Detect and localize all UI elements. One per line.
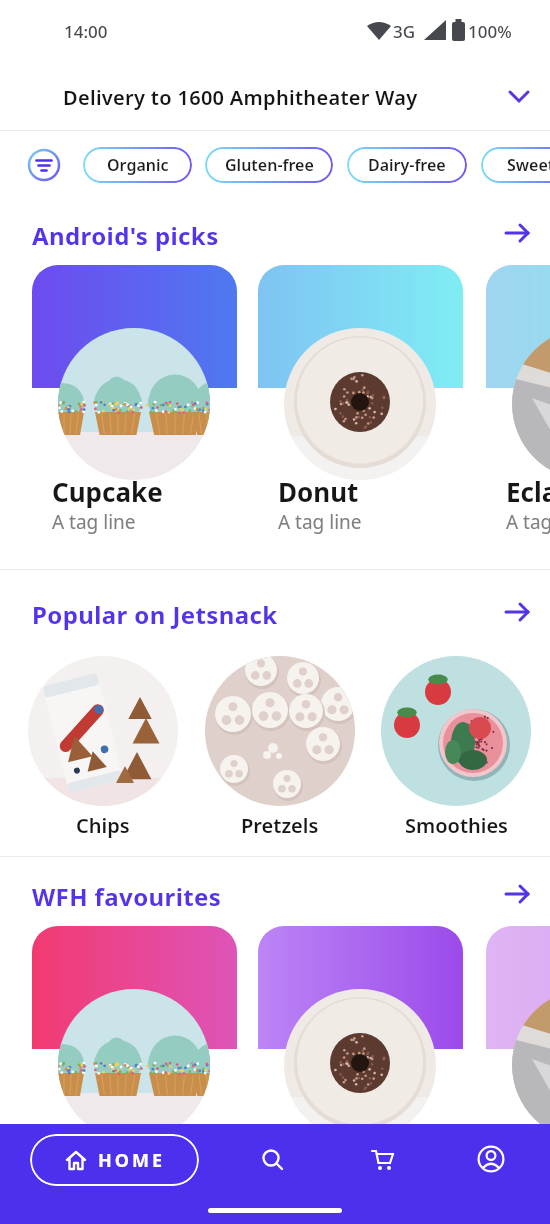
staticText: Dairy-free xyxy=(368,154,446,176)
staticText: Cupcake xyxy=(52,474,163,509)
button[interactable] xyxy=(500,597,538,629)
staticText: Pretzels xyxy=(241,812,319,838)
button[interactable] xyxy=(28,149,60,181)
staticText: Donut xyxy=(278,1135,359,1170)
staticText: Sweet xyxy=(507,154,550,176)
staticText: A tag line xyxy=(278,509,362,535)
staticText: 100% xyxy=(468,20,512,43)
staticText: 3G xyxy=(393,20,416,43)
button[interactable]: Dairy-free xyxy=(347,147,467,183)
staticText: Chips xyxy=(76,812,130,838)
staticText: WFH favourites xyxy=(32,880,222,913)
staticText: 14:00 xyxy=(64,20,108,43)
button[interactable]: Donut xyxy=(258,926,463,1213)
staticText: Organic xyxy=(107,154,169,176)
button[interactable]: Cupcake xyxy=(32,265,237,552)
button[interactable]: Chips xyxy=(28,656,178,826)
button[interactable] xyxy=(500,218,538,250)
button[interactable]: Pretzels xyxy=(205,656,355,826)
button[interactable]: Gluten-free xyxy=(205,147,333,183)
button[interactable]: Organic xyxy=(83,147,192,183)
staticText: Android's picks xyxy=(32,219,219,252)
staticText: Delivery to 1600 Amphitheater Way xyxy=(63,84,418,111)
button[interactable]: Eclair xyxy=(486,265,550,552)
staticText: Gluten-free xyxy=(225,154,314,176)
staticText: A tag line xyxy=(52,1170,136,1196)
staticText: HOME xyxy=(98,1148,166,1173)
button[interactable]: HOME xyxy=(30,1134,199,1186)
staticText: A tag line xyxy=(52,509,136,535)
button[interactable] xyxy=(363,1140,403,1180)
button[interactable] xyxy=(471,1139,511,1179)
staticText: Smoothies xyxy=(405,812,508,838)
staticText: Popular on Jetsnack xyxy=(32,598,278,631)
button[interactable]: Sweet xyxy=(481,147,550,183)
staticText: Eclair xyxy=(506,474,550,509)
staticText: Cupcake xyxy=(52,1135,163,1170)
button[interactable]: Eclair xyxy=(486,926,550,1213)
button[interactable] xyxy=(253,1140,293,1180)
button[interactable] xyxy=(500,879,538,911)
staticText: A tag line xyxy=(506,509,550,535)
button[interactable]: Smoothies xyxy=(381,656,531,826)
button[interactable]: Delivery to 1600 Amphitheater Way xyxy=(0,62,550,130)
staticText: Donut xyxy=(278,474,359,509)
button[interactable]: Cupcake xyxy=(32,926,237,1213)
button[interactable]: Donut xyxy=(258,265,463,552)
